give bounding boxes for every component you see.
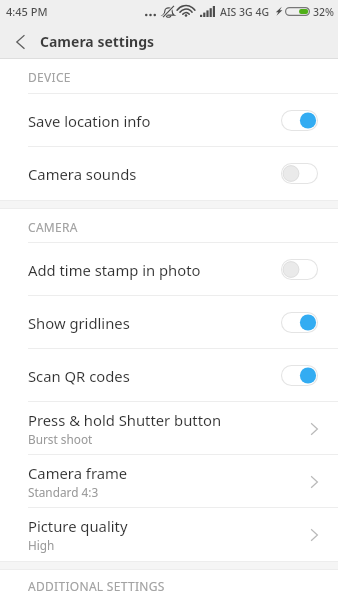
staticText: CAMERA (28, 219, 78, 235)
button[interactable]: Camera frame (0, 455, 338, 508)
button[interactable]: Press & hold Shutter button (0, 402, 338, 455)
staticText: ADDITIONAL SETTINGS (28, 578, 165, 594)
staticText: Scan QR codes (28, 366, 281, 386)
staticText: Add time stamp in photo (28, 260, 281, 280)
button[interactable]: Off (281, 163, 318, 184)
staticText: Camera settings (40, 32, 155, 51)
staticText: Burst shoot (28, 431, 93, 447)
staticText: Camera frame (28, 463, 128, 483)
staticText: Standard 4:3 (28, 484, 99, 500)
staticText: 32% (313, 5, 334, 19)
staticText: Camera sounds (28, 164, 281, 184)
button[interactable]: Save location info (0, 94, 338, 147)
button[interactable]: Picture quality (0, 508, 338, 561)
button[interactable]: Show gridlines (0, 296, 338, 349)
button[interactable]: On (281, 110, 318, 131)
staticText: AIS 3G 4G (220, 5, 270, 19)
button[interactable]: Camera sounds (0, 147, 338, 200)
button[interactable]: On (281, 365, 318, 386)
staticText: High (28, 537, 55, 553)
staticText: Save location info (28, 111, 281, 131)
button[interactable]: Scan QR codes (0, 349, 338, 402)
button[interactable]: On (281, 312, 318, 333)
staticText: DEVICE (28, 69, 71, 85)
button[interactable]: Back (0, 24, 35, 59)
staticText: Picture quality (28, 516, 128, 536)
staticText: 4:45 PM (6, 4, 48, 19)
button[interactable]: Off (281, 259, 318, 280)
button[interactable]: Add time stamp in photo (0, 243, 338, 296)
staticText: Press & hold Shutter button (28, 410, 222, 430)
staticText: Show gridlines (28, 313, 281, 333)
